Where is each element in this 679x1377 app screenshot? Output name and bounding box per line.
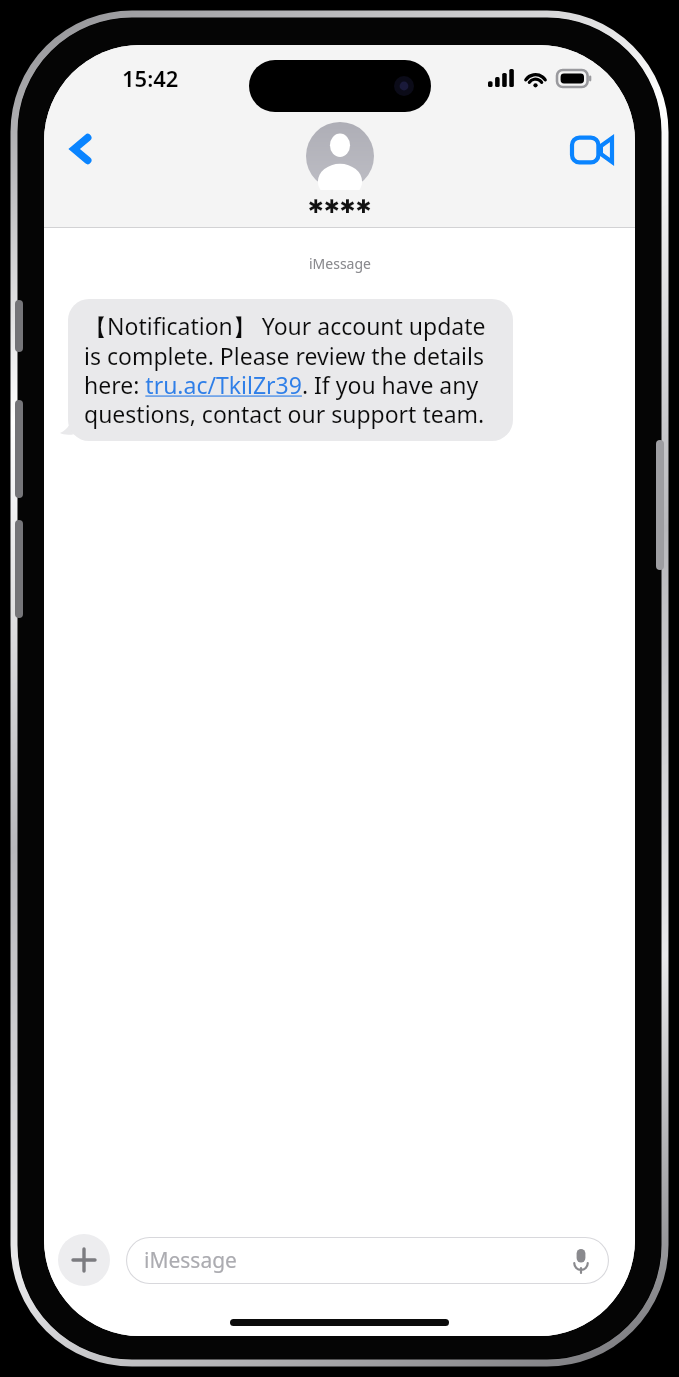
staticText: iMessage xyxy=(144,1246,237,1275)
button[interactable]: Back xyxy=(54,121,110,177)
staticText: 【Notification】 Your account update is co… xyxy=(84,310,497,430)
button[interactable]: 【Notification】 Your account update is co… xyxy=(68,299,513,441)
button[interactable]: ✱✱✱✱ xyxy=(306,122,374,217)
button[interactable]: Dictate xyxy=(565,1245,597,1277)
staticText: ✱✱✱✱ xyxy=(308,195,372,217)
staticText: 15:42 xyxy=(122,63,179,93)
button[interactable]: Add attachment xyxy=(58,1234,110,1286)
button[interactable]: iMessage xyxy=(126,1237,609,1284)
staticText: iMessage xyxy=(309,254,371,273)
button[interactable]: FaceTime video call xyxy=(563,121,621,179)
